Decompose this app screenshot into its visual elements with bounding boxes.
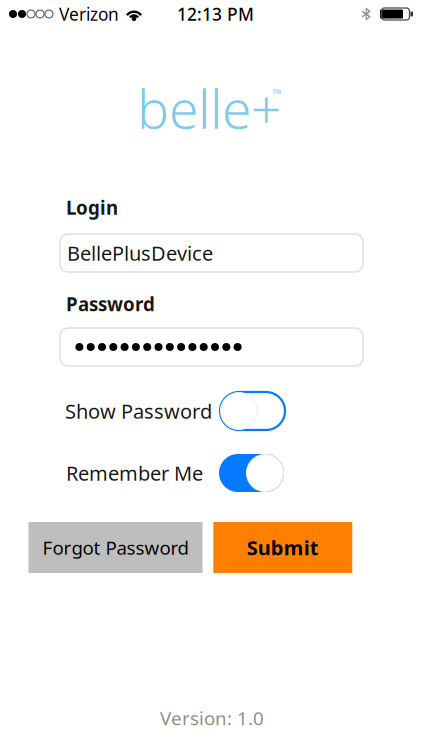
- staticText: Submit: [247, 534, 319, 561]
- staticText: Version: 1.0: [160, 706, 264, 730]
- button[interactable]: Forgot Password: [28, 522, 202, 573]
- staticText: 12:13 PM: [177, 2, 254, 25]
- button[interactable]: Remember Me: [66, 454, 284, 492]
- staticText: Remember Me: [66, 460, 203, 486]
- staticText: BellePlusDevice: [67, 240, 213, 266]
- button[interactable]: Submit: [213, 522, 352, 573]
- button[interactable]: Show Password: [66, 392, 284, 430]
- staticText: Forgot Password: [42, 535, 188, 560]
- staticText: belle+: [137, 73, 281, 143]
- staticText: Show Password: [65, 398, 212, 424]
- staticText: Login: [66, 195, 118, 220]
- staticText: Password: [66, 292, 155, 316]
- staticText: ™: [272, 85, 281, 101]
- staticText: Verizon: [59, 2, 119, 25]
